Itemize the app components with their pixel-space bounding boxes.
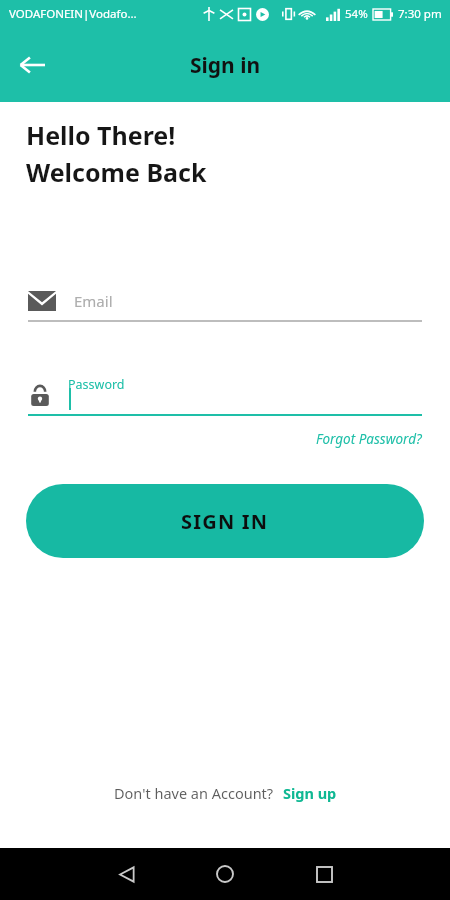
button[interactable]: Home <box>205 854 245 894</box>
staticText: Email <box>74 291 113 311</box>
staticText: Sign in <box>190 51 261 80</box>
button[interactable]: Recent apps <box>304 854 344 894</box>
button[interactable]: SIGN IN <box>26 484 424 558</box>
button[interactable]: Back <box>12 45 52 85</box>
staticText: Password <box>68 376 125 393</box>
button[interactable]: Password <box>0 368 450 416</box>
button[interactable]: Email <box>0 276 450 322</box>
staticText: Forgot Password? <box>316 430 422 448</box>
staticText: 7:30 pm <box>398 6 442 22</box>
staticText: Welcome Back <box>26 155 207 189</box>
staticText: VODAFONEIN|Vodafo… <box>9 6 137 22</box>
staticText: Don't have an Account? <box>114 783 274 803</box>
staticText: SIGN IN <box>181 508 269 535</box>
button[interactable]: Back <box>106 854 146 894</box>
staticText: Sign up <box>283 783 337 803</box>
button[interactable]: Sign up <box>283 783 337 803</box>
button[interactable]: Forgot Password? <box>316 430 422 448</box>
staticText: 54% <box>345 6 368 22</box>
staticText: Hello There! <box>26 118 176 152</box>
